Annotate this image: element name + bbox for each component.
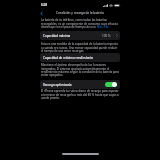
staticText: Capacidad máxima [43, 34, 71, 38]
button[interactable]: Capacidad máxima [40, 31, 120, 40]
button[interactable]: Recarga optimizada [40, 80, 120, 89]
button[interactable]: Recarga optimizada [105, 82, 117, 87]
button[interactable]: Capacidad de máximo rendimiento [40, 53, 120, 62]
staticText: El iPhone aprende tu rutina diaria de re… [41, 89, 119, 100]
staticText: Mantiene el óptimo desempeño de las func… [41, 63, 119, 77]
staticText: 6:28 [41, 3, 47, 7]
staticText: Recarga optimizada [43, 83, 72, 87]
button[interactable]: Back [38, 10, 44, 16]
staticText: Condición y recarga de la batería [56, 11, 104, 15]
staticText: 100 % [102, 34, 111, 38]
staticText: Esta es una medida de la capacidad de la… [41, 42, 119, 53]
staticText: Capacidad de máximo rendimiento [43, 56, 94, 60]
staticText: La batería de tu teléfono, como todas la… [41, 18, 119, 29]
